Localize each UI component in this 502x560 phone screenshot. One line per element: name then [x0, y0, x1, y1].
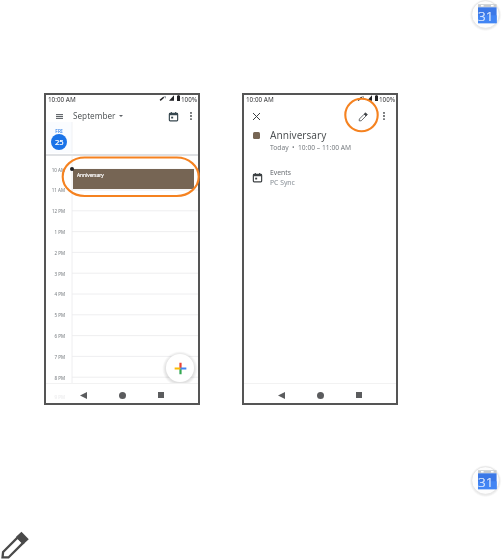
button[interactable]: Create event	[166, 354, 194, 382]
staticText: 10 AM	[39, 167, 65, 173]
button[interactable]: Back	[274, 388, 288, 402]
button[interactable]: 25	[51, 134, 67, 150]
button[interactable]: Close	[250, 110, 262, 122]
staticText: Events	[270, 168, 291, 177]
button[interactable]: Home	[313, 388, 327, 402]
button[interactable]: Anniversary	[73, 169, 194, 189]
button[interactable]: Switch calendar view	[166, 109, 180, 123]
staticText: 5 PM	[39, 312, 65, 318]
staticText: 10:00 AM	[246, 95, 274, 104]
button[interactable]: September	[73, 110, 123, 121]
staticText: Today • 10:00 – 11:00 AM	[270, 143, 352, 152]
button[interactable]: Recent apps	[352, 388, 366, 402]
staticText: 4 PM	[39, 291, 65, 297]
staticText: September	[73, 110, 116, 121]
staticText: 31	[478, 473, 494, 491]
staticText: PC Sync	[270, 178, 295, 187]
button[interactable]: Back	[76, 388, 90, 402]
staticText: FRI	[49, 128, 69, 135]
button[interactable]: Recent apps	[154, 388, 168, 402]
button[interactable]: Home	[115, 388, 129, 402]
button[interactable]: Open navigation menu	[52, 111, 66, 122]
button[interactable]	[46, 122, 72, 153]
staticText: 1 PM	[39, 229, 65, 235]
staticText: 6 PM	[39, 333, 65, 339]
button[interactable]: More options	[379, 110, 389, 122]
staticText: 7 PM	[39, 354, 65, 360]
staticText: Anniversary	[77, 172, 104, 179]
staticText: 9 PM	[39, 394, 65, 400]
staticText: 8 PM	[39, 375, 65, 381]
staticText: 2 PM	[39, 250, 65, 256]
staticText: 12 PM	[39, 208, 65, 214]
staticText: 11 AM	[39, 187, 65, 193]
button[interactable]: Edit event	[356, 109, 370, 123]
staticText: 100%	[181, 95, 198, 104]
staticText: 100%	[379, 95, 396, 104]
staticText: 31	[478, 7, 494, 25]
staticText: Anniversary	[270, 128, 327, 142]
staticText: 25	[55, 137, 64, 147]
button[interactable]: More options	[186, 110, 196, 122]
staticText: 3 PM	[39, 271, 65, 277]
staticText: 10:00 AM	[48, 95, 76, 104]
